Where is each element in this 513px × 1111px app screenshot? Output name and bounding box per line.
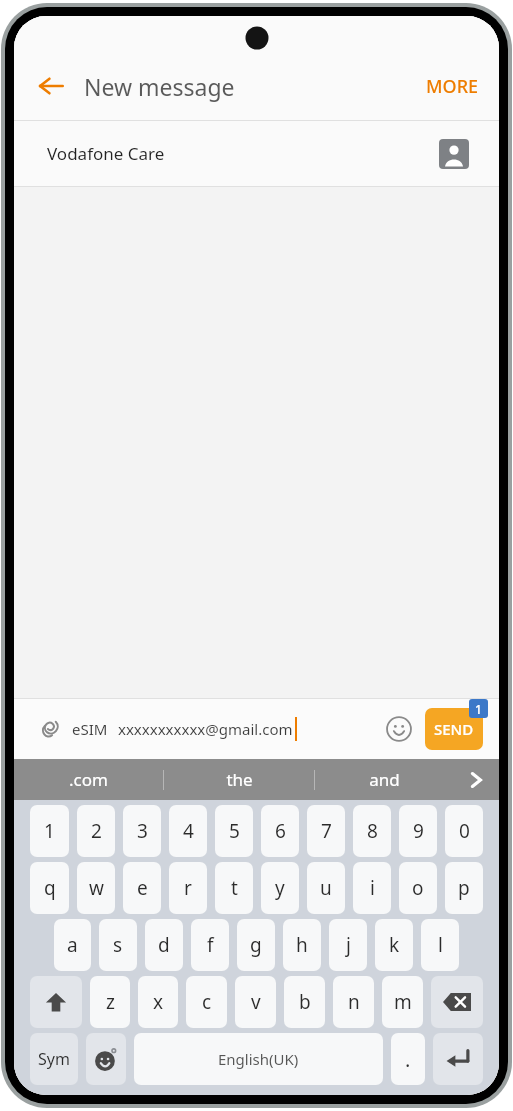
button[interactable]: c [186,976,227,1028]
staticText: q [44,875,56,901]
button[interactable]: and [315,759,453,800]
button[interactable]: s [99,919,137,971]
staticText: j [346,932,351,958]
staticText: d [158,932,170,958]
staticText: . [405,1046,411,1073]
button[interactable]: m [382,976,423,1028]
button[interactable]: w [77,862,115,914]
button[interactable]: 7 [307,805,345,857]
staticText: 2 [91,818,102,844]
button[interactable]: . [391,1033,425,1085]
staticText: l [438,932,443,958]
button[interactable]: 3 [123,805,161,857]
button[interactable]: English(UK) [134,1033,383,1085]
staticText: z [106,989,115,1015]
staticText: 4 [183,818,194,844]
staticText: Sym [38,1048,70,1070]
button[interactable]: y [261,862,299,914]
staticText: t [231,875,238,901]
staticText: SEND [434,719,474,739]
button[interactable]: 1 [30,805,69,857]
staticText: 3 [137,818,148,844]
button[interactable]: q [30,862,69,914]
button[interactable]: Add recipient [437,137,471,171]
button[interactable]: a [54,919,91,971]
staticText: n [348,989,360,1015]
staticText: k [389,932,400,958]
button[interactable]: r [169,862,207,914]
staticText: English(UK) [218,1049,299,1069]
staticText: xxxxxxxxxxx@gmail.com [118,719,293,739]
button[interactable]: z [90,976,130,1028]
button[interactable]: 5 [215,805,253,857]
button[interactable]: t [215,862,253,914]
button[interactable]: j [329,919,367,971]
staticText: o [412,875,424,901]
button[interactable]: p [445,862,483,914]
staticText: the [226,768,253,791]
button[interactable]: h [283,919,321,971]
staticText: 1 [44,818,55,844]
staticText: 0 [459,818,470,844]
button[interactable]: d [145,919,183,971]
staticText: 5 [229,818,240,844]
staticText: b [299,989,311,1015]
staticText: x [153,989,164,1015]
button[interactable]: Backspace [431,976,483,1028]
staticText: w [89,875,104,901]
staticText: and [369,768,400,791]
button[interactable]: Emoji keyboard [86,1033,126,1085]
button[interactable]: 6 [261,805,299,857]
staticText: e [137,875,148,901]
button[interactable]: Enter [433,1033,483,1085]
staticText: New message [84,71,235,102]
button[interactable]: g [237,919,275,971]
button[interactable]: b [284,976,325,1028]
staticText: i [370,875,375,901]
button[interactable]: MORE [420,66,485,107]
button[interactable]: the [164,759,314,800]
button[interactable]: v [235,976,276,1028]
button[interactable]: 2 [77,805,115,857]
staticText: r [184,875,192,901]
staticText: h [296,932,308,958]
button[interactable]: 8 [353,805,391,857]
button[interactable]: f [191,919,229,971]
staticText: 6 [275,818,286,844]
button[interactable]: o [399,862,437,914]
button[interactable]: i [353,862,391,914]
staticText: eSIM [72,719,108,739]
button[interactable]: Back [28,63,74,109]
button[interactable]: k [375,919,413,971]
staticText: .com [69,768,108,791]
button[interactable]: .com [14,759,163,800]
button[interactable]: 4 [169,805,207,857]
staticText: 9 [413,818,424,844]
button[interactable]: Vodafone Care [14,121,499,186]
staticText: 1 [475,701,482,717]
staticText: m [394,989,412,1015]
button[interactable]: 0 [445,805,483,857]
button[interactable]: l [421,919,459,971]
staticText: c [202,989,212,1015]
staticText: v [251,989,261,1015]
staticText: 8 [367,818,378,844]
button[interactable]: Sym [30,1033,78,1085]
staticText: Vodafone Care [47,142,165,165]
button[interactable]: e [123,862,161,914]
button[interactable]: SEND [425,708,483,750]
button[interactable]: Emoji [379,709,419,749]
staticText: y [275,875,285,901]
button[interactable]: More suggestions [453,759,499,800]
staticText: s [113,932,123,958]
button[interactable]: x [138,976,178,1028]
button[interactable]: Attach [30,709,70,749]
button[interactable]: n [333,976,374,1028]
staticText: g [250,932,262,958]
button[interactable]: u [307,862,345,914]
staticText: a [67,932,78,958]
button[interactable]: Shift [30,976,82,1028]
staticText: p [458,875,470,901]
staticText: f [207,932,214,958]
button[interactable]: 9 [399,805,437,857]
